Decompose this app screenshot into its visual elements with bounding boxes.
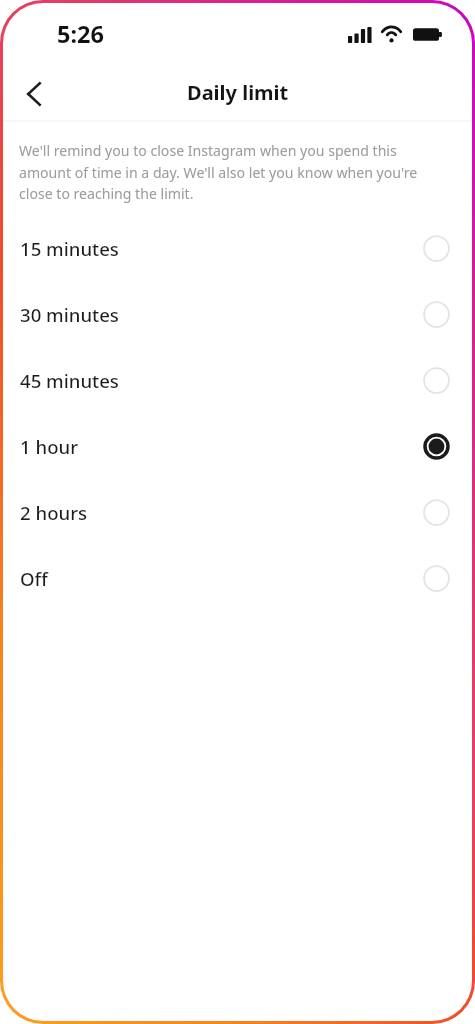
staticText: 45 minutes bbox=[20, 368, 423, 393]
button[interactable]: Back bbox=[10, 70, 58, 118]
button[interactable]: 45 minutes bbox=[3, 347, 472, 413]
button[interactable]: 15 minutes bbox=[3, 215, 472, 281]
staticText: 15 minutes bbox=[20, 236, 423, 261]
button[interactable]: 30 minutes bbox=[3, 281, 472, 347]
staticText: 2 hours bbox=[20, 500, 423, 525]
staticText: 30 minutes bbox=[20, 302, 423, 327]
staticText: We'll remind you to close Instagram when… bbox=[19, 141, 432, 203]
staticText: Daily limit bbox=[187, 79, 289, 106]
staticText: 1 hour bbox=[20, 434, 423, 459]
button[interactable]: 1 hour bbox=[3, 413, 472, 479]
staticText: Off bbox=[20, 566, 423, 591]
button[interactable]: Off bbox=[3, 545, 472, 611]
staticText: 5:26 bbox=[57, 18, 104, 50]
button[interactable]: 2 hours bbox=[3, 479, 472, 545]
